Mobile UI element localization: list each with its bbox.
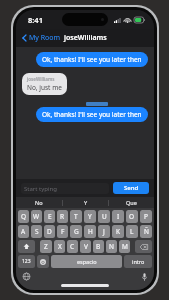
staticText: O	[129, 212, 135, 221]
button[interactable]: W	[31, 210, 42, 223]
button[interactable]: espacio	[51, 255, 122, 268]
button[interactable]: U	[98, 210, 110, 223]
button[interactable]: Dictate	[141, 272, 148, 282]
button[interactable]: No	[16, 197, 62, 208]
staticText: A	[21, 227, 26, 236]
staticText: P	[144, 212, 148, 221]
button[interactable]: Y	[63, 197, 108, 208]
staticText: T	[74, 212, 78, 221]
button[interactable]: Emoji	[37, 255, 49, 268]
button[interactable]: K	[112, 225, 124, 238]
button[interactable]: R	[57, 210, 68, 223]
button[interactable]: My Room	[16, 30, 65, 46]
button[interactable]: M	[119, 240, 130, 253]
staticText: L	[130, 227, 134, 236]
button[interactable]: Ñ	[140, 225, 152, 238]
button[interactable]: O	[126, 210, 138, 223]
staticText: K	[116, 227, 121, 236]
button[interactable]: Shift	[18, 240, 35, 253]
staticText: Ñ	[144, 227, 149, 236]
button[interactable]: intro	[124, 255, 152, 268]
button[interactable]: Ok, thanks! I'll see you later then	[36, 107, 148, 122]
button[interactable]: Start typing	[21, 183, 109, 194]
button[interactable]: joseWilliams	[22, 73, 67, 95]
staticText: E	[48, 212, 52, 221]
staticText: No, just me	[27, 83, 62, 92]
staticText: Ok, thanks! I'll see you later then	[42, 110, 142, 119]
button[interactable]: T	[70, 210, 82, 223]
staticText: Start typing	[24, 185, 57, 193]
staticText: joseWilliams	[64, 33, 107, 43]
staticText: joseWilliams	[27, 76, 55, 82]
staticText: Q	[21, 212, 27, 221]
staticText: G	[74, 227, 79, 236]
button[interactable]: V	[80, 240, 91, 253]
button[interactable]: G	[70, 225, 82, 238]
staticText: 123	[22, 258, 31, 265]
button[interactable]: B	[93, 240, 104, 253]
button[interactable]: E	[44, 210, 55, 223]
button[interactable]: L	[126, 225, 138, 238]
staticText: S	[35, 227, 39, 236]
staticText: M	[122, 242, 128, 251]
button[interactable]: Delete	[135, 240, 152, 253]
staticText: H	[88, 227, 93, 236]
staticText: N	[109, 242, 114, 251]
staticText: J	[103, 227, 105, 236]
button[interactable]: Que	[109, 197, 154, 208]
button[interactable]: Change keyboard	[22, 272, 31, 281]
button[interactable]: S	[31, 225, 42, 238]
button[interactable]: 123	[18, 255, 35, 268]
staticText: No	[35, 199, 43, 206]
staticText: Que	[126, 199, 137, 206]
button[interactable]: H	[84, 225, 96, 238]
staticText: F	[61, 227, 65, 236]
staticText: I	[117, 212, 120, 221]
staticText: espacio	[77, 258, 97, 265]
button[interactable]: I	[112, 210, 124, 223]
staticText: Ok, thanks! I'll see you later then	[42, 55, 142, 64]
button[interactable]: P	[140, 210, 152, 223]
button[interactable]: X	[54, 240, 65, 253]
staticText: W	[33, 212, 40, 221]
staticText: D	[47, 227, 52, 236]
staticText: V	[84, 242, 88, 251]
button[interactable]: Z	[40, 240, 52, 253]
staticText: R	[60, 212, 65, 221]
button[interactable]: Ok, thanks! I'll see you later then	[36, 52, 148, 67]
button[interactable]: D	[44, 225, 55, 238]
staticText: U	[102, 212, 107, 221]
staticText: X	[58, 242, 62, 251]
staticText: My Room	[29, 33, 61, 43]
button[interactable]: A	[18, 225, 29, 238]
staticText: Y	[88, 212, 92, 221]
button[interactable]: C	[67, 240, 78, 253]
staticText: Y	[84, 199, 88, 206]
button[interactable]: Send	[113, 182, 149, 194]
staticText: C	[70, 242, 75, 251]
button[interactable]: N	[106, 240, 117, 253]
staticText: 8:41	[28, 15, 43, 25]
staticText: Z	[44, 242, 48, 251]
button[interactable]: J	[98, 225, 110, 238]
staticText: intro	[132, 258, 145, 265]
button[interactable]: F	[57, 225, 68, 238]
button[interactable]: Q	[18, 210, 29, 223]
staticText: Send	[124, 184, 139, 192]
staticText: B	[96, 242, 101, 251]
button[interactable]: Y	[84, 210, 96, 223]
